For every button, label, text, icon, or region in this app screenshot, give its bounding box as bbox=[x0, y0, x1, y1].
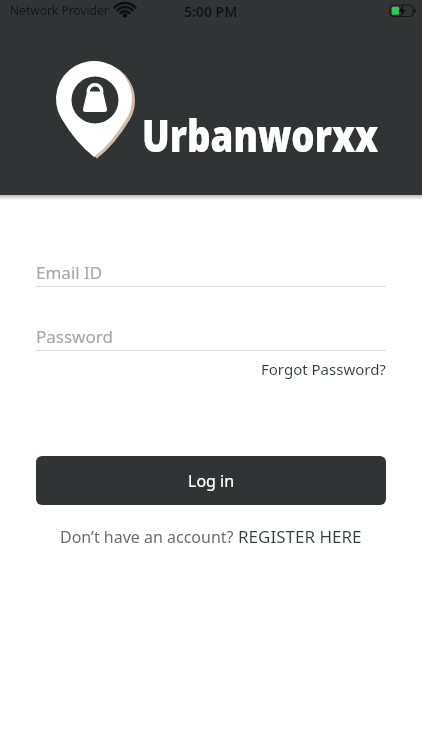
staticText: Forgot Password? bbox=[261, 359, 386, 379]
staticText: Network Provider bbox=[10, 2, 109, 18]
staticText: Email ID bbox=[36, 261, 103, 284]
button[interactable]: Log in bbox=[36, 456, 386, 505]
staticText: REGISTER HERE bbox=[238, 525, 362, 548]
button[interactable]: Password bbox=[36, 325, 386, 351]
staticText: Don’t have an account? bbox=[60, 526, 238, 548]
staticText: Log in bbox=[188, 470, 235, 492]
staticText: Password bbox=[36, 325, 113, 348]
staticText: 5:00 PM bbox=[184, 2, 238, 21]
button[interactable]: Email ID bbox=[36, 261, 386, 287]
button[interactable]: Forgot Password? bbox=[261, 359, 386, 379]
staticText: Urbanworxx bbox=[142, 104, 378, 165]
button[interactable]: Don’t have an account? bbox=[60, 525, 362, 548]
